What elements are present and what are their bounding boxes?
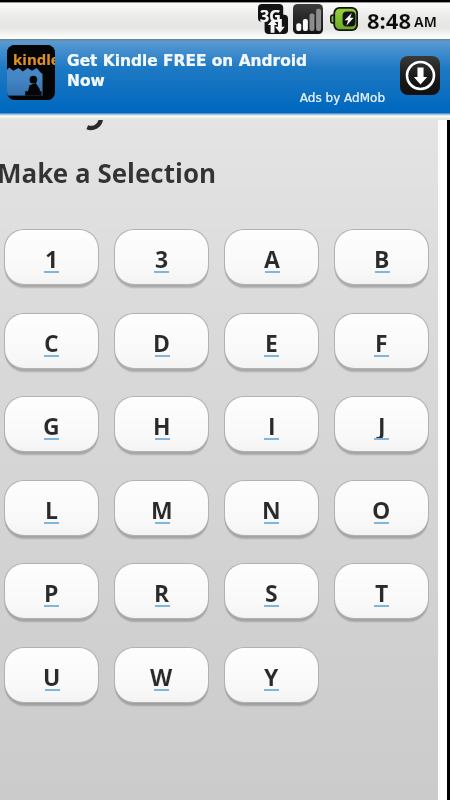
button[interactable]: O [334,480,429,539]
staticText: Get Kindle FREE on Android [67,52,308,70]
staticText: T [375,577,389,608]
button[interactable]: E [224,313,319,372]
button[interactable]: H [114,396,209,455]
button[interactable]: C [4,313,99,372]
staticText: N [262,494,281,525]
staticText: Make a Selection [0,155,217,190]
button[interactable]: J [334,396,429,455]
staticText: G [43,410,60,441]
staticText: 3 [155,243,169,274]
staticText: H [153,410,171,441]
staticText: P [44,577,59,608]
button[interactable]: G [4,396,99,455]
staticText: E [265,327,278,358]
staticText: D [153,327,171,358]
staticText: kindle [13,49,55,69]
staticText: AM [414,12,437,31]
button[interactable]: W [114,647,209,706]
staticText: C [44,327,59,358]
staticText: J [378,410,386,441]
button[interactable]: kindle [0,39,450,113]
button[interactable]: D [114,313,209,372]
button[interactable]: Y [224,647,319,706]
staticText: A [264,243,280,274]
staticText: R [154,577,170,608]
staticText: U [43,661,61,692]
button[interactable]: F [334,313,429,372]
staticText: F [375,327,388,358]
button[interactable]: U [4,647,99,706]
staticText: 8:48 [367,5,411,35]
button[interactable]: B [334,229,429,288]
button[interactable]: T [334,563,429,622]
button[interactable]: N [224,480,319,539]
staticText: Now [67,72,105,90]
staticText: S [265,577,278,608]
staticText: W [150,661,173,692]
staticText: Y [264,661,279,692]
button[interactable]: 3 [114,229,209,288]
staticText: B [374,243,390,274]
button[interactable]: L [4,480,99,539]
button[interactable]: S [224,563,319,622]
staticText: 1 [45,243,59,274]
button[interactable]: P [4,563,99,622]
staticText: Ads by AdMob [0,91,385,105]
staticText: M [151,494,173,525]
staticText: I [268,410,276,441]
staticText: 3G [260,5,281,27]
button[interactable]: 1 [4,229,99,288]
staticText: L [45,494,58,525]
button[interactable]: A [224,229,319,288]
button[interactable]: R [114,563,209,622]
button[interactable]: M [114,480,209,539]
button[interactable]: I [224,396,319,455]
button[interactable]: Download [400,56,440,95]
staticText: O [372,494,391,525]
